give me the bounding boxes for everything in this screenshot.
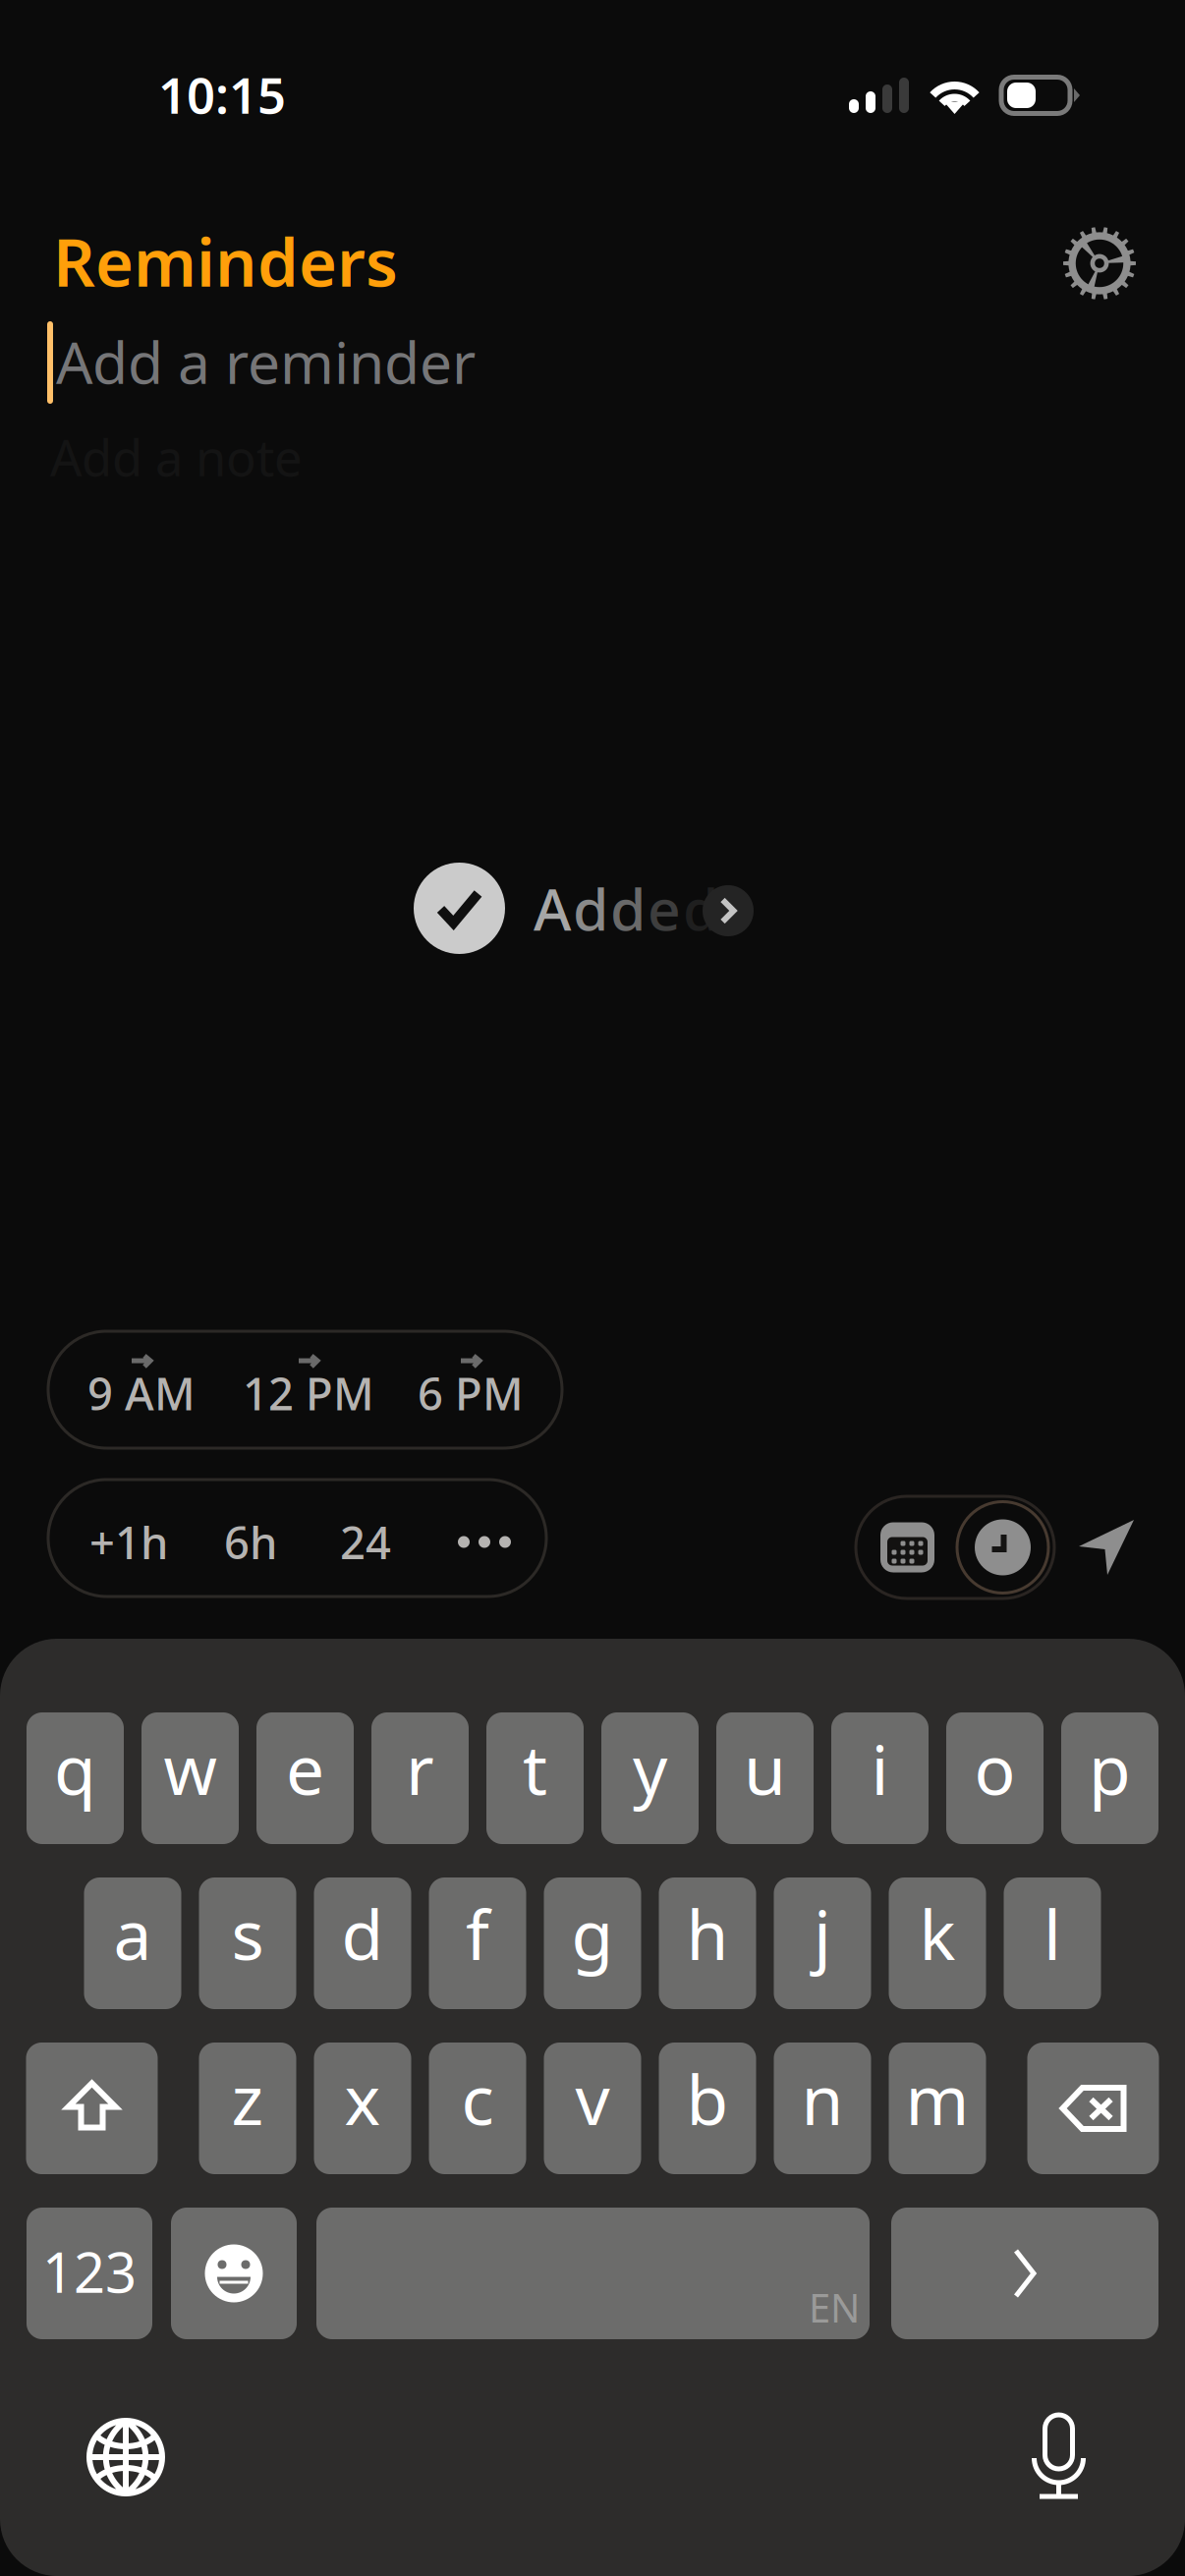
button[interactable]: a bbox=[84, 1877, 181, 2009]
button[interactable]: Time bbox=[957, 1502, 1054, 1593]
button[interactable]: t bbox=[486, 1712, 584, 1844]
staticText: d bbox=[341, 1888, 384, 1979]
button[interactable]: e bbox=[256, 1712, 354, 1844]
staticText: t bbox=[523, 1723, 547, 1814]
staticText: Reminders bbox=[53, 218, 398, 305]
button[interactable]: 6 PM bbox=[374, 1331, 562, 1448]
button[interactable]: r bbox=[371, 1712, 469, 1844]
button[interactable]: p bbox=[1061, 1712, 1158, 1844]
staticText: q bbox=[54, 1723, 96, 1814]
button[interactable]: 24 bbox=[277, 1480, 391, 1596]
button[interactable]: More durations bbox=[391, 1480, 546, 1596]
staticText: w bbox=[164, 1723, 217, 1814]
button[interactable]: w bbox=[141, 1712, 239, 1844]
button[interactable]: h bbox=[659, 1877, 756, 2009]
button[interactable]: v bbox=[544, 2043, 641, 2174]
staticText: o bbox=[974, 1723, 1016, 1814]
button[interactable]: 12 PM bbox=[196, 1331, 374, 1448]
button[interactable]: s bbox=[199, 1877, 296, 2009]
staticText: Add a note bbox=[50, 424, 303, 490]
staticText: x bbox=[344, 2053, 381, 2144]
button[interactable]: Open reminder bbox=[703, 885, 754, 936]
staticText: Add a reminder bbox=[56, 323, 476, 400]
button[interactable]: Settings bbox=[0, 0, 1136, 300]
staticText: b bbox=[686, 2053, 729, 2144]
staticText: 6h bbox=[224, 1512, 277, 1572]
button[interactable]: 6h bbox=[168, 1480, 277, 1596]
staticText: 6 PM bbox=[418, 1364, 524, 1423]
button[interactable]: q bbox=[27, 1712, 124, 1844]
staticText: g bbox=[571, 1888, 614, 1979]
staticText: e bbox=[286, 1723, 324, 1814]
staticText: s bbox=[231, 1888, 264, 1979]
button[interactable]: Dictate bbox=[1032, 2415, 1086, 2499]
button[interactable]: +1h bbox=[48, 1480, 168, 1596]
staticText: j bbox=[814, 1888, 831, 1979]
button[interactable]: n bbox=[774, 2043, 871, 2174]
staticText: d bbox=[573, 870, 608, 946]
button[interactable]: b bbox=[659, 2043, 756, 2174]
button[interactable]: Return bbox=[891, 2208, 1158, 2339]
staticText: n bbox=[801, 2053, 844, 2144]
staticText: 10:15 bbox=[158, 61, 286, 127]
staticText: i bbox=[871, 1723, 889, 1814]
staticText: k bbox=[919, 1888, 956, 1979]
button[interactable]: x bbox=[314, 2043, 411, 2174]
staticText: r bbox=[406, 1723, 434, 1814]
staticText: 123 bbox=[42, 2235, 137, 2308]
staticText: l bbox=[1044, 1888, 1061, 1979]
button[interactable]: Shift bbox=[26, 2043, 158, 2174]
button[interactable]: 9 AM bbox=[48, 1331, 196, 1448]
button[interactable]: c bbox=[429, 2043, 526, 2174]
button[interactable]: i bbox=[831, 1712, 929, 1844]
staticText: d bbox=[610, 870, 646, 946]
button[interactable]: m bbox=[889, 2043, 986, 2174]
button[interactable]: k bbox=[889, 1877, 986, 2009]
button[interactable]: space bbox=[316, 2208, 870, 2339]
staticText: d bbox=[683, 870, 718, 946]
button[interactable]: d bbox=[314, 1877, 411, 2009]
staticText: v bbox=[575, 2053, 610, 2144]
button[interactable]: z bbox=[199, 2043, 296, 2174]
button[interactable]: j bbox=[774, 1877, 871, 2009]
button[interactable]: Next keyboard bbox=[86, 2418, 165, 2496]
staticText: 24 bbox=[340, 1512, 391, 1572]
staticText: h bbox=[686, 1888, 729, 1979]
button[interactable]: o bbox=[946, 1712, 1044, 1844]
staticText: c bbox=[461, 2053, 494, 2144]
staticText: 12 PM bbox=[243, 1364, 374, 1423]
staticText: EN bbox=[809, 2281, 860, 2333]
staticText: m bbox=[905, 2053, 969, 2144]
button[interactable]: f bbox=[429, 1877, 526, 2009]
button[interactable]: Emoji bbox=[171, 2208, 297, 2339]
staticText: e bbox=[648, 870, 681, 946]
staticText: 9 AM bbox=[87, 1364, 196, 1423]
button[interactable]: u bbox=[716, 1712, 814, 1844]
staticText: a bbox=[113, 1888, 152, 1979]
button[interactable]: l bbox=[1004, 1877, 1101, 2009]
staticText: A bbox=[534, 870, 571, 946]
staticText: +1h bbox=[89, 1512, 168, 1572]
staticText: y bbox=[633, 1723, 667, 1814]
button[interactable]: Delete bbox=[1027, 2043, 1159, 2174]
button[interactable]: Location bbox=[1054, 1519, 1159, 1576]
button[interactable]: g bbox=[544, 1877, 641, 2009]
button[interactable]: y bbox=[601, 1712, 699, 1844]
button[interactable]: Date bbox=[856, 1522, 957, 1572]
staticText: p bbox=[1089, 1723, 1131, 1814]
staticText: u bbox=[744, 1723, 786, 1814]
staticText: f bbox=[466, 1888, 489, 1979]
staticText: z bbox=[231, 2053, 264, 2144]
button[interactable]: 123 bbox=[27, 2208, 152, 2339]
